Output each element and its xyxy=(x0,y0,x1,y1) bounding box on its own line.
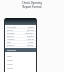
staticText: Status xyxy=(7,59,13,62)
staticText: 881245 xyxy=(27,29,34,32)
button[interactable]: Branch xyxy=(5,35,36,38)
staticText: 990.00 xyxy=(27,44,34,47)
staticText: Notes xyxy=(7,63,13,66)
staticText: Summary xyxy=(7,49,17,52)
staticText: Ref no. xyxy=(7,29,14,32)
staticText: Total xyxy=(7,55,12,58)
button[interactable]: Amount xyxy=(5,38,36,41)
staticText: Opened xyxy=(7,32,15,35)
staticText: Smith xyxy=(28,26,34,29)
staticText: Central xyxy=(27,35,34,38)
staticText: Owner xyxy=(7,67,14,70)
staticText: Branch xyxy=(7,35,14,38)
button[interactable]: Owner xyxy=(5,66,36,70)
staticText: Balance xyxy=(7,44,15,47)
button[interactable]: Ref no. xyxy=(5,29,36,32)
button[interactable]: Status xyxy=(5,58,36,62)
button[interactable]: Total xyxy=(5,54,36,58)
staticText: Fees xyxy=(7,41,12,44)
staticText: 12/04/24 xyxy=(25,32,34,35)
staticText: Report Format xyxy=(22,5,42,9)
button[interactable]: Opened xyxy=(5,32,36,35)
staticText: 12.50 xyxy=(28,41,34,44)
staticText: Amount xyxy=(7,38,15,41)
button[interactable]: Fees xyxy=(5,41,36,44)
button[interactable]: Notes xyxy=(5,62,36,66)
staticText: 1,250.00 xyxy=(26,38,34,41)
staticText: Check Opening xyxy=(22,1,42,5)
staticText: Customer xyxy=(7,26,17,29)
button[interactable]: Customer xyxy=(5,26,36,29)
button[interactable]: Balance xyxy=(5,44,36,47)
button[interactable]: Summary xyxy=(5,48,36,52)
